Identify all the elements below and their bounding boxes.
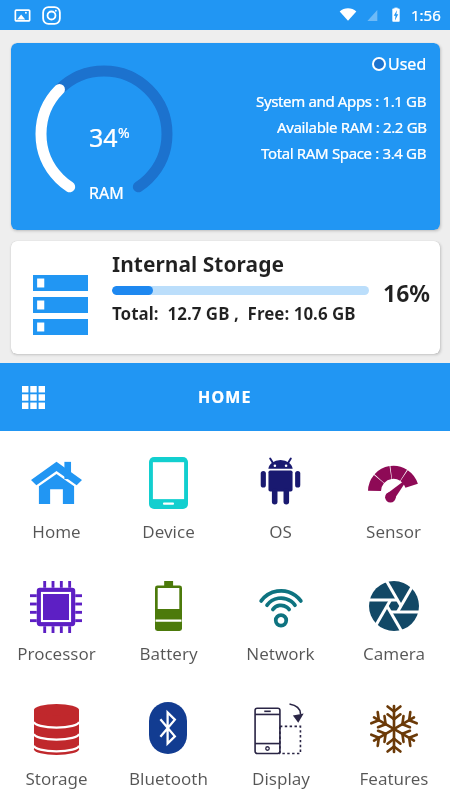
staticText: Available RAM : 2.2 GB — [277, 117, 427, 137]
button[interactable]: Features — [337, 675, 450, 797]
staticText: Processor — [17, 642, 96, 665]
staticText: Bluetooth — [129, 767, 208, 790]
button[interactable]: Device — [112, 431, 224, 553]
button[interactable]: Display — [224, 675, 337, 797]
staticText: Home — [32, 520, 81, 543]
staticText: RAM — [89, 182, 124, 204]
button[interactable]: Network — [224, 553, 337, 675]
button[interactable]: Apps menu — [18, 382, 48, 412]
staticText: System and Apps : 1.1 GB — [256, 91, 427, 111]
button[interactable]: Storage — [0, 675, 112, 797]
staticText: Total: 12.7 GB , Free: 10.6 GB — [112, 302, 356, 325]
button[interactable]: 34 — [11, 43, 440, 230]
button[interactable]: OS — [224, 431, 337, 553]
button[interactable]: Camera — [337, 553, 450, 675]
button[interactable]: Processor — [0, 553, 112, 675]
button[interactable]: Home — [0, 431, 112, 553]
staticText: Display — [252, 767, 310, 790]
button[interactable]: Sensor — [337, 431, 450, 553]
staticText: Network — [246, 642, 315, 665]
staticText: 1:56 — [411, 5, 441, 25]
button[interactable]: Bluetooth — [112, 675, 224, 797]
staticText: Total RAM Space : 3.4 GB — [261, 143, 427, 163]
staticText: Battery — [139, 642, 198, 665]
staticText: OS — [269, 520, 292, 543]
staticText: Storage — [25, 767, 88, 790]
staticText: HOME — [198, 386, 252, 408]
staticText: Features — [359, 767, 429, 790]
button[interactable]: HOME — [0, 363, 450, 431]
staticText: Internal Storage — [112, 250, 284, 279]
staticText: Device — [142, 520, 195, 543]
staticText: Sensor — [366, 520, 421, 543]
staticText: 16% — [383, 277, 431, 308]
button[interactable]: Battery — [112, 553, 224, 675]
staticText: % — [118, 123, 130, 142]
staticText: Used — [388, 53, 427, 75]
staticText: 34 — [89, 120, 118, 154]
staticText: Camera — [363, 642, 425, 665]
button[interactable]: Internal Storage — [11, 241, 440, 354]
